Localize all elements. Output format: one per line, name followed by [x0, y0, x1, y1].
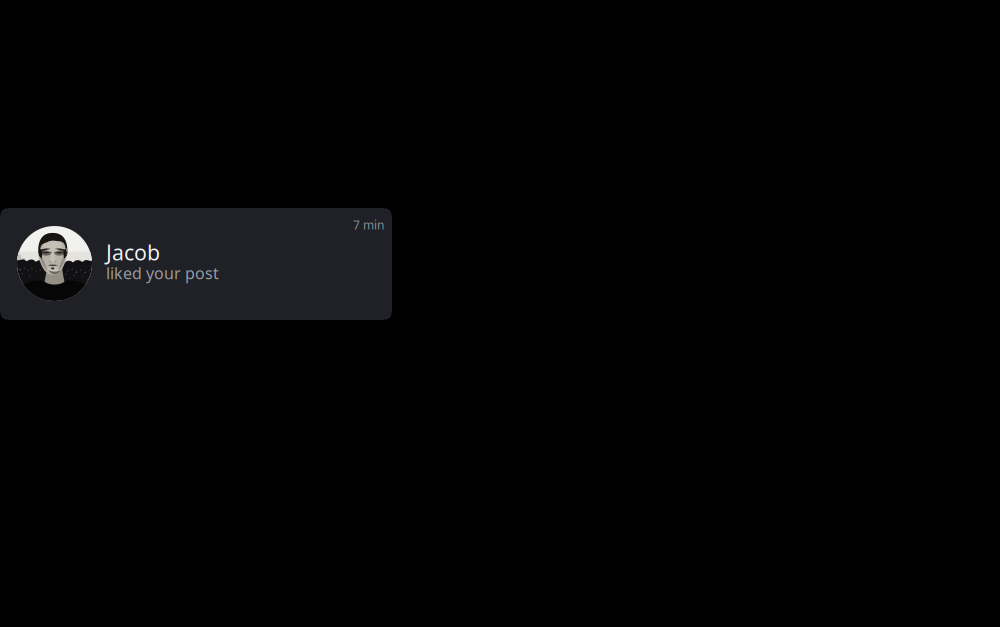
staticText: liked your post [106, 262, 219, 283]
staticText: 7 min [353, 217, 384, 233]
button[interactable]: 7 min [0, 208, 392, 320]
staticText: Jacob [106, 238, 160, 266]
